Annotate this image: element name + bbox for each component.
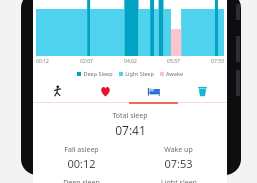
staticText: Awake [166, 70, 183, 77]
button[interactable]: Activity [33, 80, 81, 102]
staticText: 00:12 [36, 58, 49, 65]
staticText: 05:57 [167, 58, 180, 65]
staticText: Deep sleep [63, 178, 100, 183]
staticText: 07:53 [211, 58, 224, 65]
staticText: 02:07 [80, 58, 93, 65]
staticText: Fall asleep [64, 145, 99, 155]
staticText: Wake up [164, 145, 193, 155]
staticText: Light sleep [161, 178, 197, 183]
staticText: 00:12 [67, 156, 96, 171]
staticText: Deep Sleep [83, 70, 113, 77]
staticText: 04:02 [124, 58, 137, 65]
staticText: 07:53 [164, 156, 193, 171]
button[interactable]: Heart rate [81, 80, 129, 102]
staticText: Light Sleep [125, 70, 154, 77]
button[interactable]: Hydration [178, 80, 227, 102]
button[interactable]: Sleep [129, 80, 178, 102]
staticText: Total sleep [112, 111, 148, 121]
staticText: 07:41 [115, 122, 146, 138]
